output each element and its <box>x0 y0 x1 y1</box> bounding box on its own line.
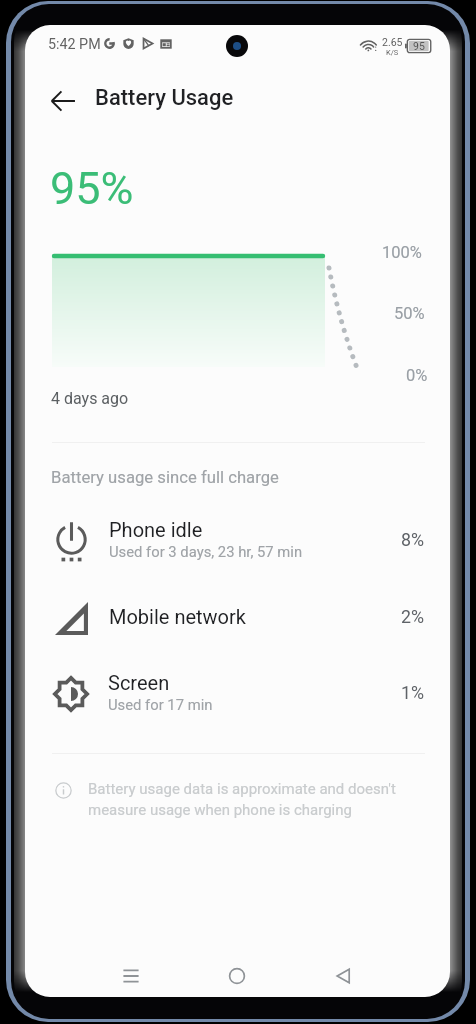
staticText: Battery usage data is approximate and do… <box>88 780 398 818</box>
staticText: 4 days ago <box>51 389 129 408</box>
staticText: 5:42 PM <box>48 36 101 53</box>
staticText: Battery usage since full charge <box>51 468 279 488</box>
staticText: 8% <box>401 529 425 550</box>
staticText: 100% <box>382 243 422 262</box>
staticText: 95 <box>413 40 425 52</box>
staticText: 50% <box>394 304 425 323</box>
staticText: 95% <box>50 162 134 215</box>
staticText: Mobile network <box>109 605 246 628</box>
button[interactable]: Back <box>320 952 368 997</box>
staticText: 2% <box>401 606 425 627</box>
staticText: 1% <box>401 682 425 703</box>
button[interactable]: Home <box>213 952 261 997</box>
staticText: Screen <box>108 671 170 694</box>
staticText: K/S <box>386 48 399 57</box>
staticText: Used for 17 min <box>108 696 213 713</box>
button[interactable]: Phone idle <box>42 502 425 576</box>
staticText: 2.65 <box>382 36 403 48</box>
staticText: Used for 3 days, 23 hr, 57 min <box>109 543 303 560</box>
button[interactable]: Recents <box>107 952 155 997</box>
staticText: Phone idle <box>109 518 203 541</box>
button[interactable]: Screen <box>42 655 425 729</box>
staticText: 0% <box>406 366 428 385</box>
button[interactable]: Back <box>40 78 86 124</box>
staticText: Battery Usage <box>95 85 234 111</box>
button[interactable]: Mobile network <box>42 579 425 653</box>
